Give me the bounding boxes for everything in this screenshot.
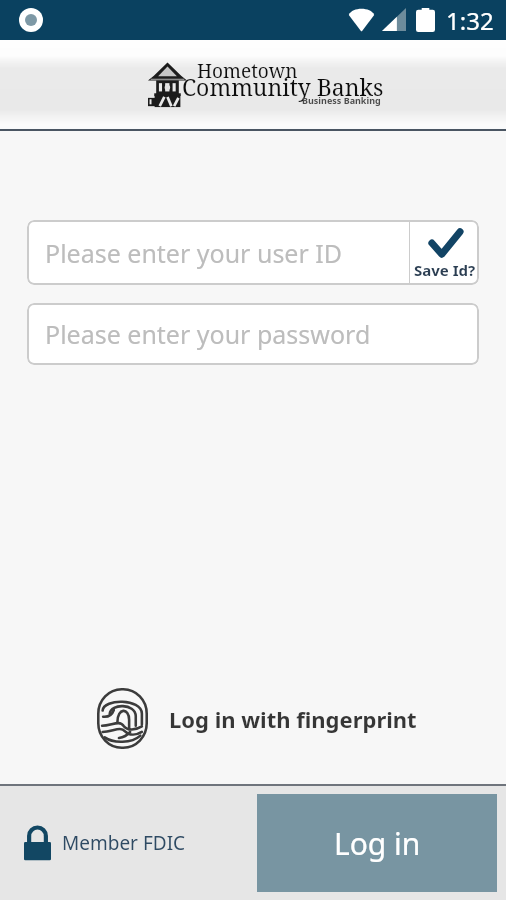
staticText: Hometown: [197, 58, 298, 84]
button[interactable]: Member FDIC: [24, 825, 186, 861]
other: Notification: [19, 8, 43, 32]
button[interactable]: Log in: [257, 794, 497, 892]
staticText: Log in with fingerprint: [169, 704, 417, 734]
button[interactable]: Log in with fingerprint: [97, 688, 417, 749]
button[interactable]: User ID input: [27, 220, 409, 285]
staticText: Please enter your user ID: [45, 236, 343, 270]
button[interactable]: Please enter your password: [27, 303, 479, 365]
staticText: Log in: [334, 823, 421, 864]
staticText: Business Banking: [302, 94, 381, 106]
staticText: Save Id?: [414, 260, 476, 280]
button[interactable]: Save Id: [410, 220, 479, 285]
staticText: Member FDIC: [62, 830, 186, 856]
staticText: Please enter your password: [45, 317, 371, 351]
staticText: 1:32: [446, 4, 494, 37]
staticText: Community Banks: [182, 71, 384, 102]
